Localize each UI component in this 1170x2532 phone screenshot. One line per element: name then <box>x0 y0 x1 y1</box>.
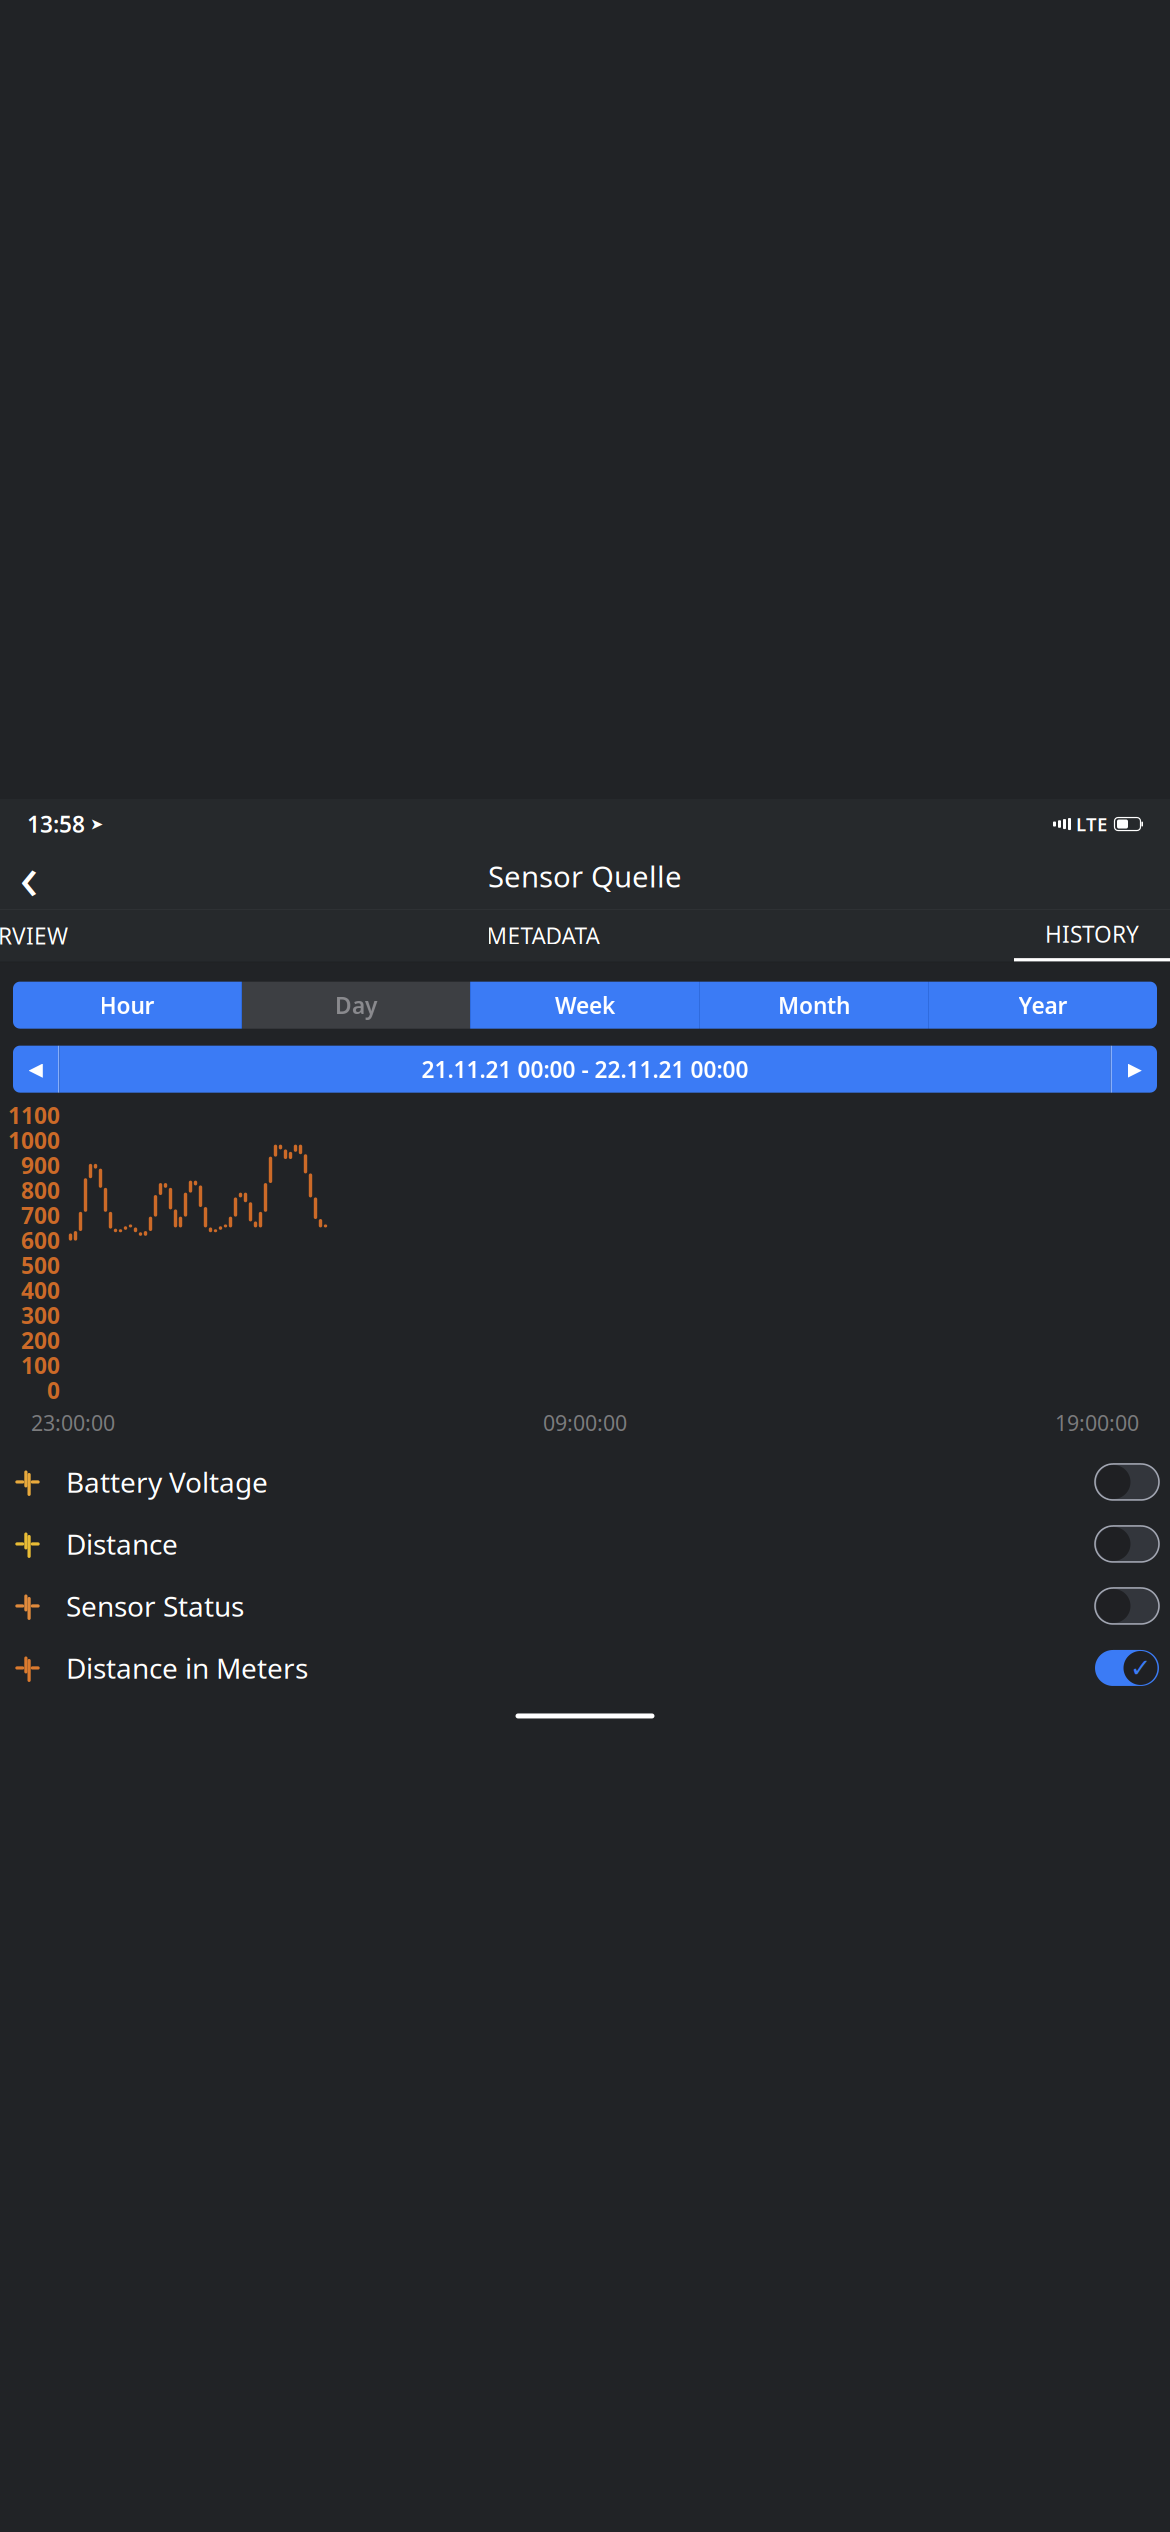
staticText: 100 <box>21 1350 60 1380</box>
staticText: Year <box>1018 990 1067 1020</box>
staticText: 800 <box>21 1175 60 1205</box>
staticText: 1000 <box>8 1125 60 1155</box>
staticText: 1100 <box>8 1100 60 1130</box>
button[interactable]: Year <box>929 982 1157 1029</box>
staticText: HISTORY <box>1045 919 1139 949</box>
staticText: Distance <box>66 1525 178 1563</box>
staticText: LTE <box>1076 812 1107 836</box>
staticText: 400 <box>21 1275 60 1305</box>
button[interactable]: Hour <box>13 982 241 1029</box>
staticText: ➤ <box>90 815 103 833</box>
staticText: 900 <box>21 1150 60 1180</box>
staticText: 13:58 <box>27 809 85 839</box>
staticText: ◀ <box>28 1058 42 1080</box>
button[interactable]: Distance <box>0 1513 1170 1575</box>
staticText: Distance in Meters <box>66 1649 308 1687</box>
staticText: 0 <box>47 1375 60 1405</box>
button[interactable]: 21.11.21 00:00 - 22.11.21 00:00 <box>59 1046 1111 1093</box>
staticText: Day <box>335 990 377 1020</box>
staticText: METADATA <box>486 921 599 951</box>
button[interactable]: Day <box>242 982 470 1029</box>
staticText: Sensor Quelle <box>488 857 682 896</box>
staticText: 19:00:00 <box>1055 1409 1139 1437</box>
button[interactable]: Sensor Status <box>0 1575 1170 1637</box>
button[interactable]: RVIEW <box>0 910 72 962</box>
button[interactable]: Month <box>700 982 928 1029</box>
staticText: RVIEW <box>0 921 68 951</box>
staticText: Hour <box>99 990 154 1020</box>
staticText: ▶ <box>1127 1058 1141 1080</box>
button[interactable]: METADATA <box>473 910 613 962</box>
button[interactable]: Week <box>471 982 699 1029</box>
staticText: 23:00:00 <box>31 1409 115 1437</box>
staticText: Battery Voltage <box>66 1463 268 1501</box>
staticText: Week <box>555 990 615 1020</box>
staticText: 200 <box>21 1325 60 1355</box>
staticText: ✓ <box>1130 1654 1151 1682</box>
staticText: 700 <box>21 1200 60 1230</box>
button[interactable]: Back <box>0 849 58 903</box>
staticText: Month <box>778 990 850 1020</box>
staticText: 21.11.21 00:00 - 22.11.21 00:00 <box>421 1054 748 1084</box>
button[interactable]: Previous period <box>13 1046 58 1093</box>
button[interactable]: Next period <box>1112 1046 1157 1093</box>
staticText: 600 <box>21 1225 60 1255</box>
button[interactable]: Distance in Meters <box>0 1637 1170 1699</box>
staticText: ‹ <box>19 835 38 917</box>
staticText: 300 <box>21 1300 60 1330</box>
button[interactable]: Battery Voltage <box>0 1451 1170 1513</box>
staticText: 09:00:00 <box>543 1409 627 1437</box>
staticText: 500 <box>21 1250 60 1280</box>
staticText: Sensor Status <box>66 1587 244 1625</box>
button[interactable]: HISTORY <box>1014 910 1170 962</box>
